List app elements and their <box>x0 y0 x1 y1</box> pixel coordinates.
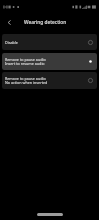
staticText: Insert to resume audio <box>5 61 45 66</box>
staticText: No action when inserted <box>5 80 48 85</box>
staticText: Wearing detection <box>24 19 67 26</box>
button[interactable]: Back <box>1 15 17 30</box>
staticText: Remove to pause audio <box>5 57 46 62</box>
staticText: Disable <box>5 40 18 45</box>
button[interactable]: Remove to pause audio <box>2 72 97 89</box>
button[interactable]: Remove to pause audio <box>2 53 97 70</box>
staticText: Remove to pause audio <box>5 76 46 81</box>
button[interactable]: Disable <box>2 34 97 50</box>
